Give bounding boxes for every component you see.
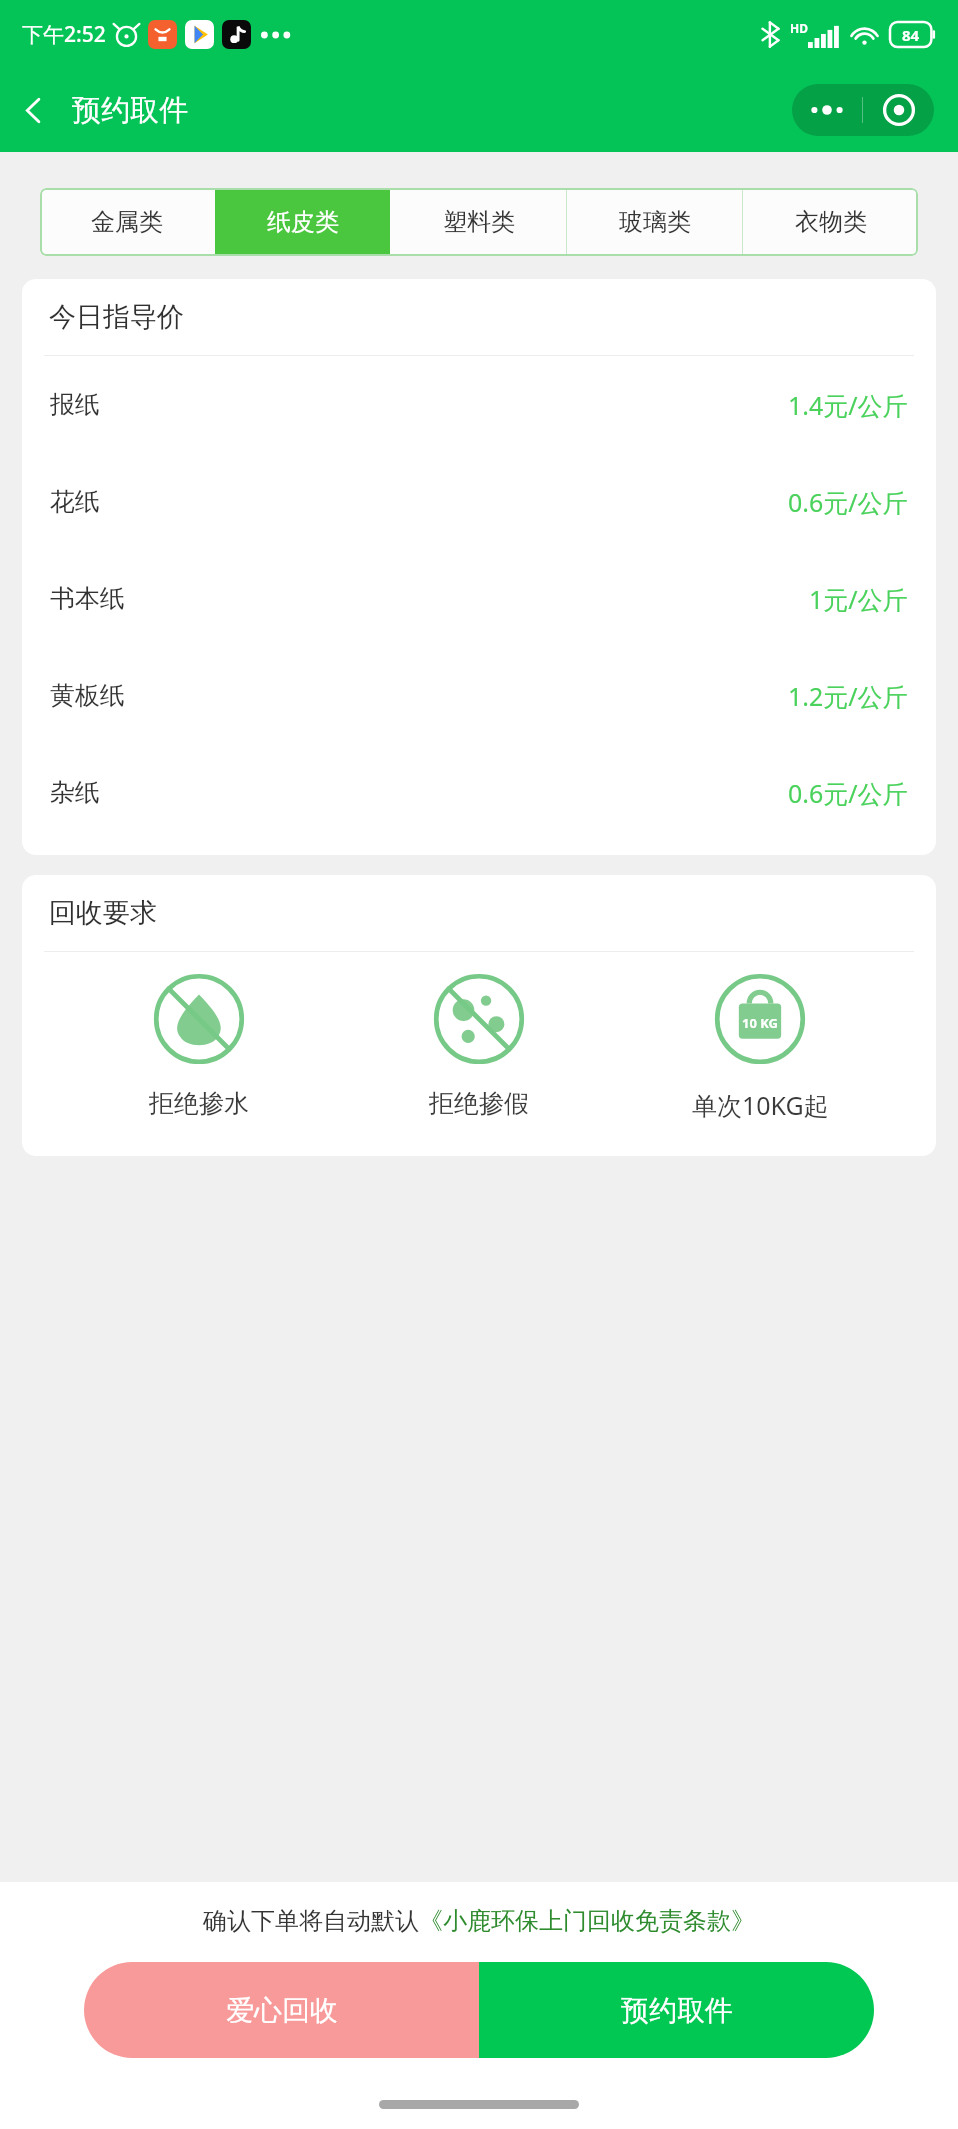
button[interactable]: 爱心回收 (84, 1962, 479, 2058)
staticText: 今日指导价 (49, 300, 184, 334)
button[interactable]: 拒绝掺假 (369, 972, 589, 1119)
button[interactable]: 《小鹿环保上门回收免责条款》 (419, 1906, 755, 1936)
staticText: 爱心回收 (226, 1993, 338, 2028)
button[interactable]: 塑料类 (391, 188, 566, 256)
button[interactable]: 纸皮类 (215, 188, 390, 256)
staticText: 单次10KG起 (692, 1088, 829, 1122)
button[interactable]: Close mini program (863, 84, 934, 136)
staticText: HD (790, 20, 808, 36)
staticText: 1元/公斤 (809, 582, 908, 616)
staticText: 0.6元/公斤 (788, 485, 908, 519)
button[interactable]: 书本纸 (22, 550, 936, 647)
staticText: 预约取件 (72, 92, 188, 129)
button[interactable]: 花纸 (22, 453, 936, 550)
button[interactable]: 黄板纸 (22, 647, 936, 744)
button[interactable]: More menu (792, 84, 862, 136)
staticText: 玻璃类 (619, 207, 691, 237)
button[interactable]: 玻璃类 (567, 188, 742, 256)
button[interactable]: 10 KG (650, 972, 870, 1122)
staticText: 确认下单将自动默认 (203, 1906, 419, 1936)
staticText: 报纸 (50, 389, 100, 420)
staticText: 1.4元/公斤 (788, 388, 908, 422)
staticText: 书本纸 (50, 583, 125, 614)
staticText: 杂纸 (50, 777, 100, 808)
button[interactable]: 预约取件 (479, 1962, 874, 2058)
button[interactable]: 拒绝掺水 (89, 972, 309, 1119)
staticText: 回收要求 (49, 896, 157, 930)
staticText: 10 KG (742, 1014, 779, 1032)
staticText: 拒绝掺水 (149, 1088, 249, 1119)
button[interactable]: 衣物类 (743, 188, 918, 256)
button[interactable]: 报纸 (22, 356, 936, 453)
button[interactable]: 金属类 (40, 188, 214, 256)
staticText: 预约取件 (621, 1993, 733, 2028)
staticText: 下午2:52 (22, 20, 106, 49)
button[interactable]: Back (0, 77, 66, 143)
staticText: 金属类 (91, 207, 163, 237)
staticText: 拒绝掺假 (429, 1088, 529, 1119)
staticText: 塑料类 (443, 207, 515, 237)
staticText: 衣物类 (795, 207, 867, 237)
staticText: 黄板纸 (50, 680, 125, 711)
button[interactable]: 杂纸 (22, 744, 936, 841)
staticText: 花纸 (50, 486, 100, 517)
staticText: 84 (902, 25, 920, 45)
staticText: 0.6元/公斤 (788, 776, 908, 810)
staticText: 纸皮类 (267, 207, 339, 237)
staticText: 1.2元/公斤 (788, 679, 908, 713)
